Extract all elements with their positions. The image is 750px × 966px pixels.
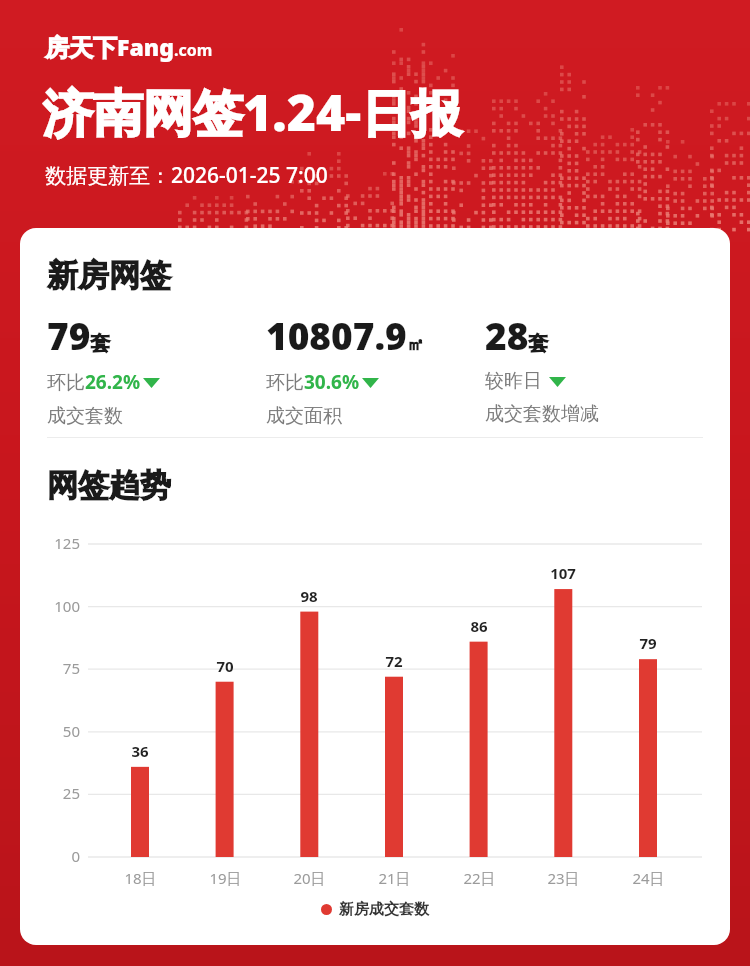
button[interactable]: 房天下 Fang.com [45, 31, 213, 63]
staticText: 18日 [124, 868, 157, 888]
staticText: 107 [550, 563, 576, 583]
staticText: 环比30.6% [266, 369, 360, 395]
staticText: 网签趋势 [47, 466, 171, 505]
staticText: 20日 [293, 868, 326, 888]
staticText: 19日 [209, 868, 242, 888]
button[interactable]: 79套 [47, 310, 262, 428]
staticText: 75 [62, 658, 80, 678]
staticText: 86 [470, 616, 488, 636]
staticText: 成交面积 [266, 404, 342, 428]
staticText: 较昨日 [485, 369, 542, 393]
staticText: 24日 [632, 868, 665, 888]
staticText: 98 [300, 586, 318, 606]
staticText: 50 [62, 721, 80, 741]
staticText: 79套 [47, 310, 111, 360]
staticText: 环比26.2% [47, 369, 141, 395]
staticText: 21日 [378, 868, 411, 888]
button[interactable]: 新房成交套数 [0, 900, 750, 919]
staticText: 成交套数 [47, 404, 123, 428]
staticText: 数据更新至：2026-01-25 7:00 [45, 161, 328, 190]
staticText: 100 [54, 596, 80, 616]
staticText: 23日 [547, 868, 580, 888]
staticText: 79 [639, 633, 657, 653]
staticText: 房天下Fang.com [45, 31, 213, 63]
staticText: 新房成交套数 [339, 900, 429, 919]
staticText: 25 [62, 783, 80, 803]
staticText: 成交套数增减 [485, 402, 599, 426]
button[interactable]: 28套 [485, 310, 710, 426]
staticText: 36 [131, 741, 149, 761]
staticText: 70 [216, 656, 234, 676]
button[interactable]: 10807.9㎡ [266, 310, 481, 428]
staticText: 72 [385, 651, 403, 671]
staticText: 125 [54, 533, 80, 553]
staticText: 10807.9㎡ [266, 310, 424, 360]
staticText: 济南网签1.24-日报 [43, 78, 462, 146]
staticText: 新房网签 [47, 256, 171, 295]
staticText: 28套 [485, 310, 549, 360]
staticText: 22日 [463, 868, 496, 888]
staticText: 0 [71, 846, 80, 866]
